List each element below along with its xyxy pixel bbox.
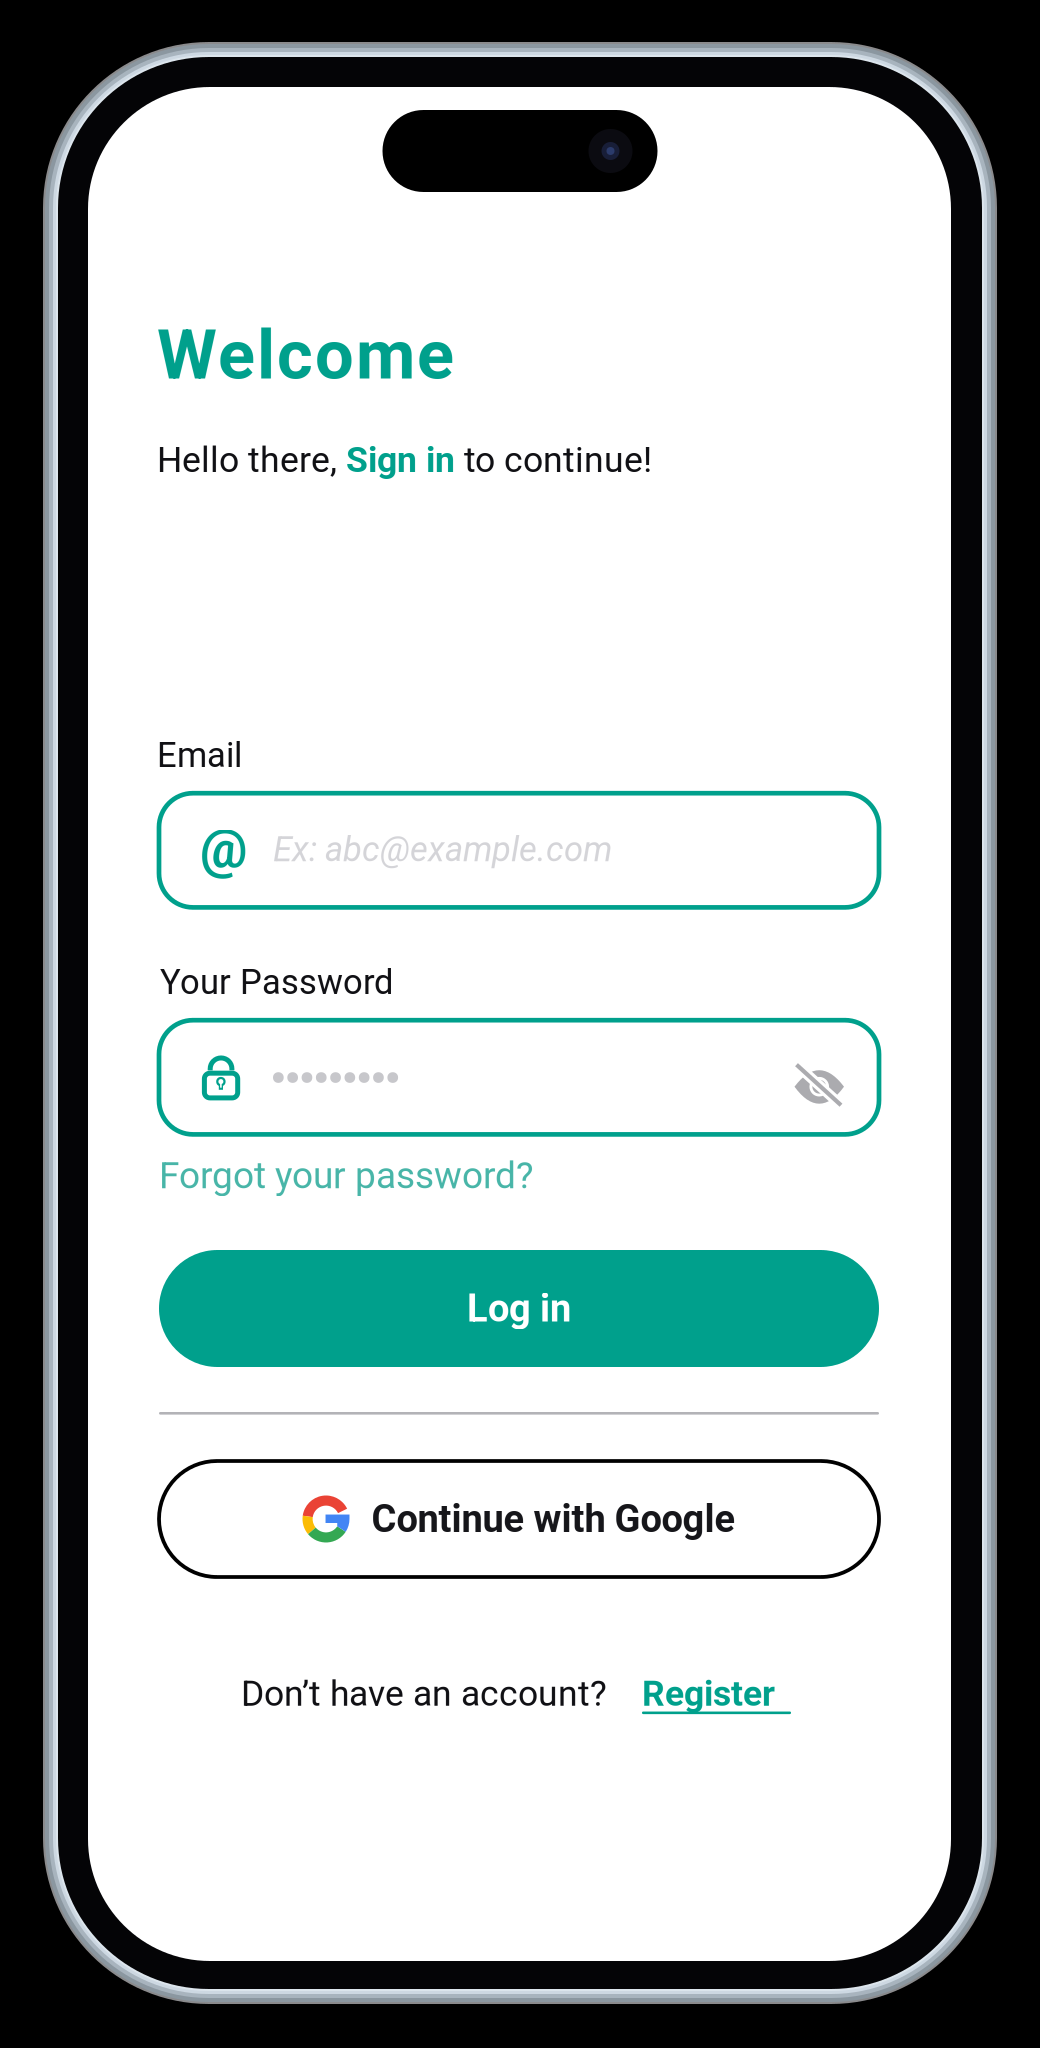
staticText: Forgot your password? [159, 1154, 533, 1197]
staticText: Ex: abc@example.com [273, 829, 612, 870]
button[interactable]: Log in [159, 1250, 879, 1367]
button[interactable] [159, 1020, 879, 1134]
staticText: to continue! [455, 439, 652, 481]
staticText: Your Password [160, 962, 393, 1002]
staticText: Register [642, 1673, 775, 1714]
staticText: Don’t have an account? [241, 1673, 607, 1714]
staticText: Sign in [346, 439, 455, 481]
button[interactable]: @ [159, 793, 879, 907]
staticText: Email [157, 735, 242, 775]
button[interactable]: Register [642, 1673, 791, 1714]
button[interactable]: Continue with Google [159, 1461, 879, 1577]
button[interactable]: Forgot your password? [159, 1154, 533, 1197]
button[interactable]: Show password [794, 1069, 844, 1105]
staticText: Welcome [157, 315, 454, 395]
staticText: @ [200, 818, 248, 880]
staticText: Hello there, [157, 439, 346, 481]
staticText: Log in [467, 1286, 571, 1331]
staticText: Continue with Google [371, 1497, 735, 1541]
